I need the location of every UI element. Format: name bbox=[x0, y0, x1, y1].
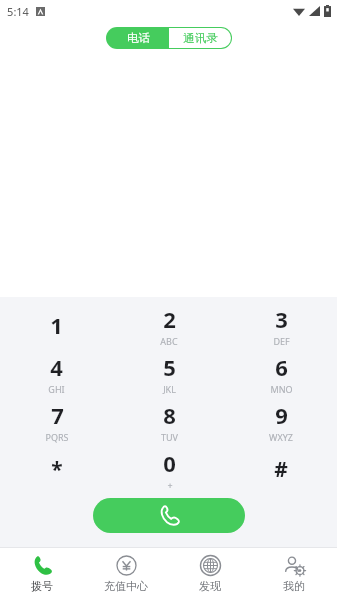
button[interactable]: 3 bbox=[225, 301, 337, 349]
staticText: # bbox=[274, 455, 288, 484]
staticText: TUV bbox=[161, 431, 178, 443]
button[interactable]: 4 bbox=[0, 349, 113, 397]
staticText: 6 bbox=[275, 352, 288, 382]
button[interactable]: 6 bbox=[225, 349, 337, 397]
staticText: 2 bbox=[163, 304, 176, 334]
button[interactable]: 电话 bbox=[107, 28, 169, 48]
staticText: 1 bbox=[50, 310, 63, 340]
staticText: + bbox=[167, 479, 173, 491]
button[interactable]: 7 bbox=[0, 397, 113, 445]
staticText: 发现 bbox=[199, 579, 221, 593]
staticText: 9 bbox=[275, 400, 288, 430]
staticText: DEF bbox=[273, 335, 290, 347]
staticText: 3 bbox=[275, 304, 288, 334]
button[interactable]: 9 bbox=[225, 397, 337, 445]
button[interactable]: Call bbox=[93, 498, 245, 533]
button[interactable]: 2 bbox=[113, 301, 225, 349]
staticText: 8 bbox=[163, 400, 176, 430]
staticText: 5 bbox=[163, 352, 176, 382]
staticText: 充值中心 bbox=[104, 579, 148, 593]
button[interactable]: 发现 bbox=[168, 548, 252, 600]
staticText: 7 bbox=[51, 400, 64, 430]
staticText: 通讯录 bbox=[183, 31, 218, 45]
button[interactable]: 8 bbox=[113, 397, 225, 445]
button[interactable]: 5 bbox=[113, 349, 225, 397]
button[interactable]: 充值中心 bbox=[84, 548, 168, 600]
staticText: ABC bbox=[160, 335, 178, 347]
staticText: 5:14 bbox=[7, 4, 29, 19]
button[interactable]: 1 bbox=[0, 301, 113, 349]
button[interactable]: * bbox=[0, 445, 113, 493]
button[interactable]: # bbox=[225, 445, 337, 493]
staticText: GHI bbox=[48, 383, 65, 395]
button[interactable]: 0 bbox=[113, 445, 225, 493]
staticText: 拨号 bbox=[31, 579, 53, 593]
button[interactable]: 通讯录 bbox=[169, 28, 231, 48]
staticText: 4 bbox=[50, 352, 63, 382]
button[interactable]: 拨号 bbox=[0, 548, 84, 600]
staticText: PQRS bbox=[45, 431, 69, 443]
staticText: 0 bbox=[163, 448, 176, 478]
staticText: MNO bbox=[270, 383, 293, 395]
staticText: JKL bbox=[163, 383, 176, 395]
staticText: WXYZ bbox=[269, 431, 293, 443]
staticText: 电话 bbox=[127, 31, 150, 45]
staticText: 我的 bbox=[283, 579, 305, 593]
staticText: * bbox=[51, 455, 63, 484]
button[interactable]: 我的 bbox=[252, 548, 336, 600]
